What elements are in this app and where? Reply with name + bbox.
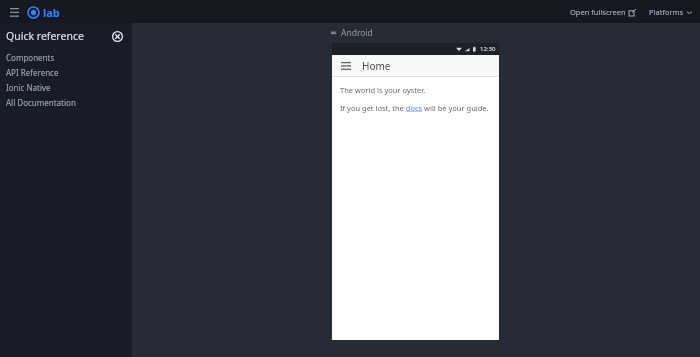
staticText: Open fullscreen [570, 7, 626, 17]
button[interactable]: Ionic Native [0, 80, 132, 95]
button[interactable]: Open fullscreen [568, 5, 638, 19]
staticText: Android [341, 27, 373, 39]
staticText: Home [362, 59, 391, 73]
staticText: Components [6, 52, 55, 63]
staticText: Ionic Native [6, 82, 51, 93]
staticText: All Documentation [6, 97, 76, 108]
staticText: 12:30 [480, 45, 496, 53]
button[interactable]: Components [0, 50, 132, 65]
staticText: API Reference [6, 67, 59, 78]
staticText: Platforms [649, 7, 684, 17]
button[interactable]: All Documentation [0, 95, 132, 110]
staticText: Quick reference [6, 29, 84, 43]
staticText: The world is your oyster. [340, 85, 426, 95]
button[interactable]: Platforms [647, 5, 694, 19]
button[interactable]: Close [110, 29, 124, 43]
staticText: lab [43, 5, 60, 20]
button[interactable]: lab [27, 5, 60, 20]
staticText: If you get lost, the docs will be your g… [340, 103, 489, 113]
button[interactable]: Open navigation menu [339, 59, 353, 73]
button[interactable]: API Reference [0, 65, 132, 80]
button[interactable]: Menu [6, 4, 22, 20]
